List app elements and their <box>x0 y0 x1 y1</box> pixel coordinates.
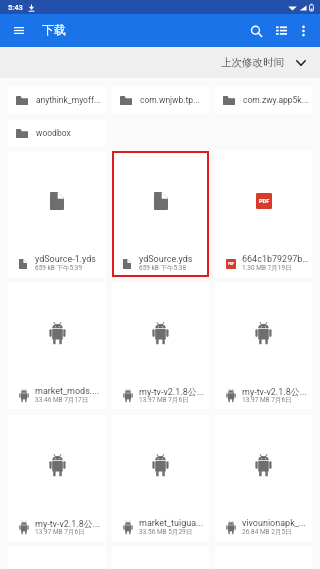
staticText: 659 kB 下午5:39 <box>35 264 83 272</box>
staticText: 1.30 MB 7月19日 <box>242 264 292 272</box>
button[interactable]: my-tv-v2.1.8公... <box>112 283 209 409</box>
staticText: com.zwy.app5k... <box>243 95 309 105</box>
staticText: 13.97 MB 7月6日 <box>35 528 85 536</box>
staticText: woodbox <box>36 128 71 138</box>
button[interactable]: my-tv-v2.1.8公... <box>8 415 106 541</box>
staticText: 5:43 <box>8 3 23 12</box>
staticText: 上次修改时间 <box>221 56 284 69</box>
staticText: my-tv-v2.1.8公... <box>139 386 204 397</box>
button[interactable]: More options <box>292 19 315 42</box>
button[interactable]: vivounionapk_... <box>215 415 312 541</box>
staticText: com.wnjwb.tp... <box>140 95 200 105</box>
button[interactable]: Switch view mode <box>267 17 295 45</box>
button[interactable]: market_mods.... <box>8 283 106 409</box>
staticText: 33.46 MB 7月17日 <box>35 396 89 404</box>
button[interactable]: PDF <box>215 151 312 277</box>
staticText: 26.84 MB 2月5日 <box>242 528 292 536</box>
button[interactable]: Search <box>242 17 270 45</box>
staticText: ydSource.yds <box>139 254 193 265</box>
staticText: 664c1b79297b... <box>242 254 309 265</box>
button[interactable]: com.zwy.app5k... <box>215 87 312 113</box>
staticText: 13.97 MB 7月6日 <box>242 396 292 404</box>
staticText: ydSource-1.yds <box>35 254 97 265</box>
staticText: 13.97 MB 7月6日 <box>139 396 189 404</box>
staticText: my-tv-v2.1.8公... <box>35 518 100 529</box>
staticText: market_tuigua... <box>139 518 204 529</box>
staticText: market_mods.... <box>35 386 100 397</box>
button[interactable]: anythink_myoff... <box>8 87 106 113</box>
staticText: 下载 <box>42 22 66 37</box>
button[interactable]: my-tv-v2.1.8公... <box>215 283 312 409</box>
button[interactable]: ydSource.yds <box>112 151 209 277</box>
button[interactable]: 上次修改时间 <box>213 47 320 78</box>
button[interactable]: market_tuigua... <box>112 415 209 541</box>
button[interactable]: ydSource-1.yds <box>8 151 106 277</box>
button[interactable]: Open navigation drawer <box>5 16 33 44</box>
staticText: my-tv-v2.1.8公... <box>242 386 307 397</box>
staticText: PDF <box>259 198 270 204</box>
staticText: 659 kB 下午5:38 <box>139 264 187 272</box>
staticText: 33.56 MB 5月29日 <box>139 528 193 536</box>
staticText: anythink_myoff... <box>36 95 101 105</box>
button[interactable]: woodbox <box>8 120 106 146</box>
button[interactable]: com.wnjwb.tp... <box>112 87 209 113</box>
staticText: PDF <box>228 262 235 266</box>
staticText: vivounionapk_... <box>242 518 306 529</box>
